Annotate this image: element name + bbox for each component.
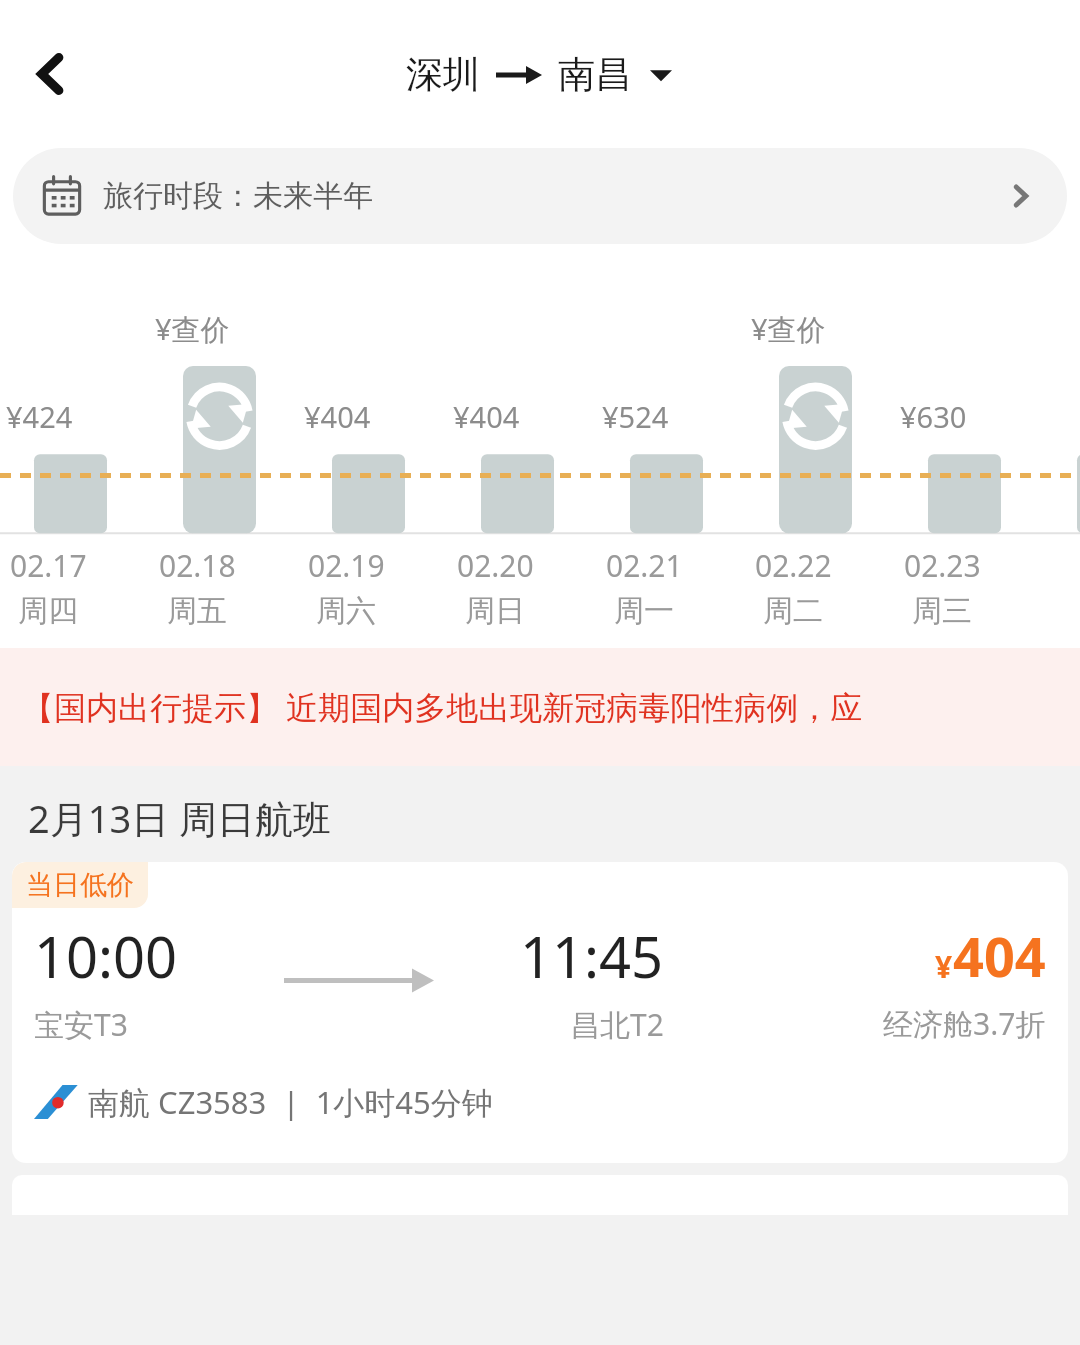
staticText: ¥524 <box>602 397 669 436</box>
staticText: 周三 <box>912 592 972 630</box>
staticText: 经济舱3.7折 <box>883 1003 1046 1044</box>
staticText: ¥查价 <box>751 309 826 349</box>
staticText: 周日 <box>465 592 525 630</box>
button[interactable]: Back <box>14 41 80 107</box>
staticText: 宝安T3 <box>34 1004 128 1045</box>
staticText: 02.21 <box>606 545 683 586</box>
staticText: 南航 CZ3583 | 1小时45分钟 <box>88 1081 493 1123</box>
staticText: 404 <box>953 919 1046 993</box>
staticText: ¥404 <box>304 397 371 436</box>
button[interactable]: 旅行时段：未来半年 <box>13 148 1067 244</box>
button[interactable]: Change route <box>648 62 674 88</box>
staticText: 02.17 <box>10 545 87 586</box>
staticText: 【国内出行提示】 近期国内多地出现新冠病毒阳性病例，应 <box>22 685 863 729</box>
staticText: 深圳 <box>406 51 480 98</box>
staticText: 02.23 <box>904 545 981 586</box>
staticText: 周二 <box>763 592 823 630</box>
staticText: 02.20 <box>457 545 534 586</box>
staticText: ¥404 <box>453 397 520 436</box>
staticText: 当日低价 <box>26 868 134 902</box>
staticText: 昌北T2 <box>570 1004 664 1045</box>
staticText: 2月13日 周日航班 <box>28 792 332 844</box>
staticText: 周一 <box>614 592 674 630</box>
staticText: 周四 <box>18 592 78 630</box>
staticText: 02.18 <box>159 545 236 586</box>
staticText: 南昌 <box>558 51 632 98</box>
staticText: 02.19 <box>308 545 385 586</box>
staticText: 周五 <box>167 592 227 630</box>
button[interactable]: 【国内出行提示】 近期国内多地出现新冠病毒阳性病例，应 <box>0 648 1080 766</box>
staticText: ¥630 <box>900 397 967 436</box>
staticText: 10:00 <box>34 918 178 994</box>
staticText: ¥查价 <box>155 309 230 349</box>
button[interactable]: 当日低价 <box>12 862 1068 1163</box>
staticText: ¥ <box>935 946 953 987</box>
staticText: 11:45 <box>520 918 664 994</box>
staticText: 周六 <box>316 592 376 630</box>
staticText: 02.22 <box>755 545 832 586</box>
staticText: ¥424 <box>6 397 73 436</box>
staticText: 旅行时段：未来半年 <box>103 177 373 215</box>
